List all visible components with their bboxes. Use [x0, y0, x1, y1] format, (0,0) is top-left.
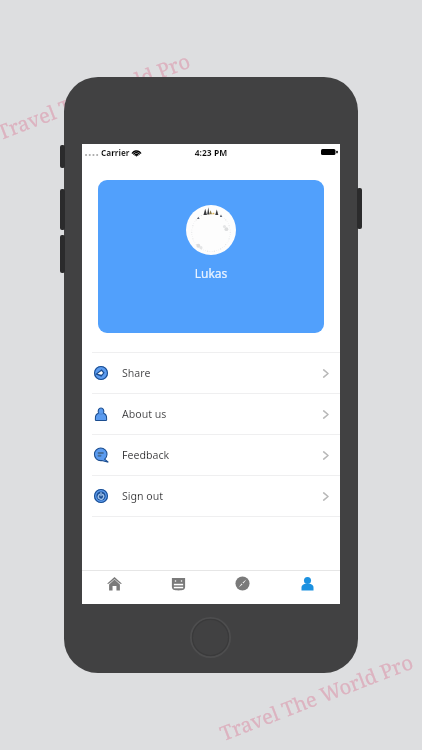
button[interactable]: Share: [82, 353, 340, 393]
button[interactable]: Home: [82, 570, 146, 604]
button[interactable]: Explore: [210, 570, 275, 604]
button[interactable]: Profile: [275, 570, 340, 604]
staticText: Carrier: [101, 147, 130, 158]
staticText: Lukas: [98, 265, 324, 281]
staticText: Feedback: [122, 448, 170, 462]
staticText: Travel The World Pro: [0, 47, 194, 146]
staticText: Sign out: [122, 489, 164, 503]
staticText: Share: [122, 366, 151, 380]
button[interactable]: Sign out: [82, 476, 340, 516]
button[interactable]: News: [146, 570, 210, 604]
staticText: 4:23 PM: [82, 147, 340, 159]
button[interactable]: About us: [82, 394, 340, 434]
staticText: Travel The World Pro: [216, 648, 417, 747]
button[interactable]: Lukas: [98, 180, 324, 333]
button[interactable]: Feedback: [82, 435, 340, 475]
staticText: About us: [122, 407, 167, 421]
